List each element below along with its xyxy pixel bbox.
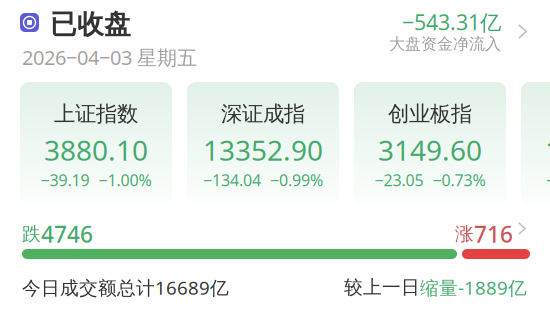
staticText: −39.19 [40, 169, 89, 191]
staticText: −543.31亿 [402, 8, 501, 36]
staticText: −1.00% [98, 169, 151, 191]
staticText: −134.04 [203, 169, 261, 191]
staticText: 大盘资金净流入 [389, 34, 501, 54]
staticText: 1020.40 [545, 131, 550, 169]
staticText: 较上一日 [344, 276, 420, 299]
staticText: −0.99% [270, 169, 323, 191]
staticText: 创业板指 [388, 101, 472, 127]
staticText: −23.05 [374, 169, 423, 191]
button[interactable]: −543.31亿 [383, 11, 531, 59]
staticText: 13352.90 [203, 131, 323, 169]
staticText: −9.12 [546, 169, 550, 191]
staticText: 4746 [41, 219, 93, 249]
staticText: −0.73% [432, 169, 485, 191]
staticText: 上证指数 [54, 101, 138, 127]
button[interactable]: 跌 [20, 220, 532, 244]
staticText: 716 [474, 219, 513, 249]
staticText: 涨 [455, 222, 474, 245]
staticText: 缩量-1889亿 [420, 275, 527, 300]
staticText: 已收盘 [50, 8, 131, 41]
staticText: 2026−04−03 星期五 [22, 44, 197, 71]
staticText: 3149.60 [378, 131, 482, 169]
staticText: 3880.10 [44, 131, 148, 169]
staticText: 跌 [22, 222, 41, 245]
staticText: 深证成指 [221, 101, 305, 127]
staticText: 今日成交额总计16689亿 [22, 275, 229, 300]
